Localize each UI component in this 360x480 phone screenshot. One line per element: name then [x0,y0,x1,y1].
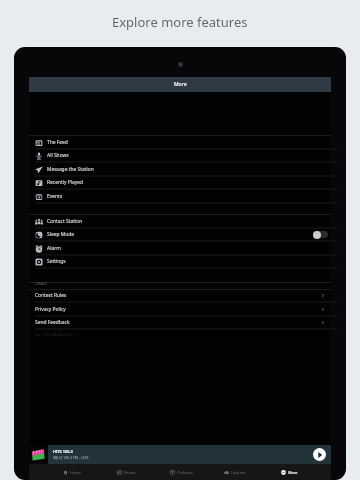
button[interactable]: Alarm [29,242,331,255]
staticText: Message the Station [47,166,94,173]
button[interactable]: The Feed [29,136,331,149]
button[interactable]: Shows [99,464,154,480]
staticText: HITS 106.3 [53,449,73,454]
staticText: Podcasts [177,470,193,475]
staticText: Explore more features [112,13,248,31]
staticText: Alarm [47,245,61,252]
staticText: Contest Rules [35,292,67,299]
button[interactable]: Privacy Policy [29,303,331,316]
button[interactable]: Home [44,464,99,480]
staticText: Send Feedback [35,319,70,326]
button[interactable]: Message the Station [29,163,331,176]
button[interactable]: All Shows [29,149,331,162]
button[interactable]: Events [29,190,331,203]
button[interactable]: More [262,464,316,480]
button[interactable]: Recently Played [29,176,331,189]
button[interactable]: Podcasts [154,464,208,480]
button[interactable]: Contest Rules [29,289,331,302]
staticText: WJLQ 106.3 FM - LIVE [53,455,89,460]
staticText: Events [47,193,63,200]
staticText: More [288,470,298,475]
staticText: Privacy Policy [35,306,66,313]
staticText: Shows [124,470,136,475]
button[interactable]: Contact Station [29,215,331,228]
staticText: LINKS [35,281,47,287]
button[interactable]: Uploads [208,464,262,480]
button[interactable]: Send Feedback [29,316,331,329]
button[interactable]: Play [313,448,326,461]
staticText: All Shows [47,152,69,159]
staticText: Sleep Mode [47,231,74,238]
button[interactable]: More [29,77,331,92]
staticText: ver. 1.3.0 (Build 930) [35,332,73,337]
staticText: Contact Station [47,218,83,225]
button[interactable]: Settings [29,255,331,268]
button[interactable]: Sleep mode toggle [311,230,328,239]
staticText: Recently Played [47,179,83,186]
button[interactable]: Sleep Mode [29,228,331,241]
staticText: Settings [47,258,66,265]
button[interactable]: HITS 106.3 [29,445,331,464]
staticText: More [174,81,187,88]
staticText: Uploads [231,470,246,475]
staticText: The Feed [47,139,68,146]
staticText: Home [70,470,81,475]
